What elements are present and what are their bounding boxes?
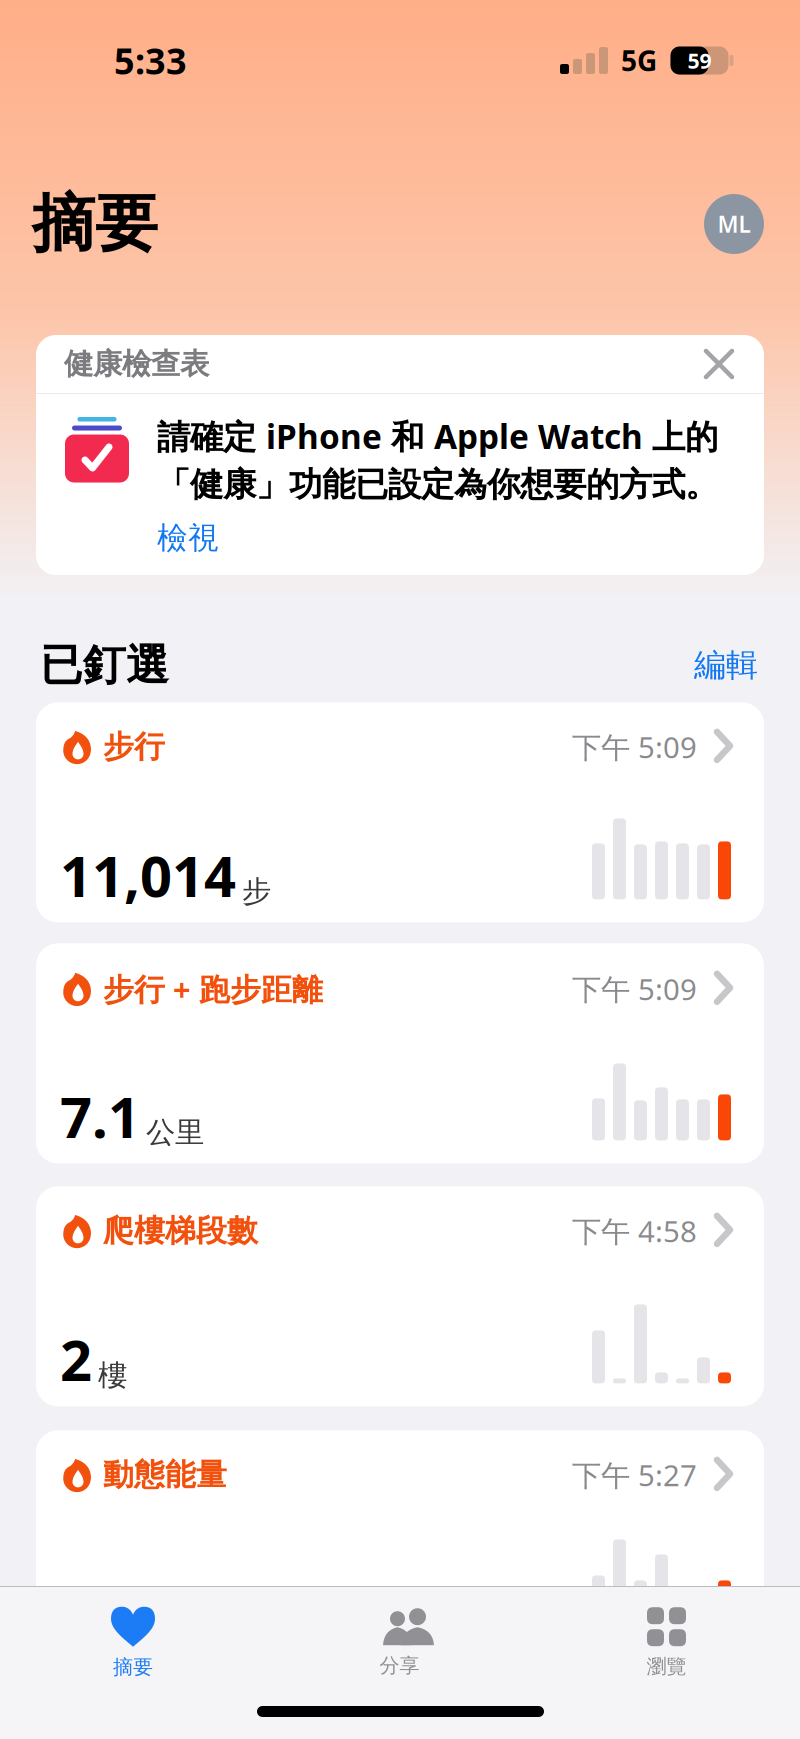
staticText: 編輯 (694, 646, 758, 685)
staticText: 步行 (103, 728, 165, 766)
button[interactable]: 檢視 (157, 511, 219, 557)
staticText: ML (717, 209, 750, 239)
staticText: 下午 5:27 (572, 1455, 697, 1494)
staticText: 5:33 (114, 37, 187, 84)
staticText: 爬樓梯段數 (103, 1212, 258, 1250)
button[interactable]: 摘要 (0, 1598, 266, 1688)
staticText: 公里 (146, 1114, 204, 1150)
staticText: 檢視 (157, 519, 219, 557)
button[interactable]: 步行 + 跑步距離 (36, 943, 764, 1163)
button[interactable]: 個人檔案 (704, 194, 764, 254)
staticText: 請確定 iPhone 和 Apple Watch 上的 (157, 414, 718, 458)
button[interactable]: 分享 (266, 1598, 533, 1688)
staticText: 動態能量 (103, 1456, 227, 1494)
staticText: 樓 (98, 1357, 127, 1393)
staticText: 下午 4:58 (572, 1211, 697, 1250)
staticText: 瀏覽 (646, 1654, 686, 1679)
staticText: 7.1 (60, 1079, 140, 1153)
button[interactable]: 瀏覽 (533, 1598, 800, 1688)
button[interactable]: 編輯 (694, 646, 758, 685)
staticText: 5G (621, 42, 657, 79)
staticText: 已釘選 (40, 639, 169, 691)
staticText: 步行 + 跑步距離 (103, 968, 323, 1009)
button[interactable]: 步行 (36, 702, 764, 922)
staticText: 下午 5:09 (572, 727, 697, 766)
staticText: 步 (242, 873, 271, 909)
staticText: 2 (60, 1322, 92, 1396)
staticText: 下午 5:09 (572, 969, 697, 1008)
staticText: 摘要 (113, 1655, 153, 1679)
staticText: 「健康」功能已設定為你想要的方式。 (157, 464, 718, 505)
staticText: 59 (687, 46, 711, 75)
button[interactable]: 關閉 (706, 351, 732, 377)
staticText: 分享 (379, 1653, 419, 1678)
button[interactable]: 爬樓梯段數 (36, 1186, 764, 1406)
staticText: 摘要 (32, 185, 158, 262)
button[interactable]: 動態能量 (36, 1430, 764, 1650)
staticText: 11,014 (60, 838, 236, 912)
staticText: 健康檢查表 (64, 346, 209, 382)
